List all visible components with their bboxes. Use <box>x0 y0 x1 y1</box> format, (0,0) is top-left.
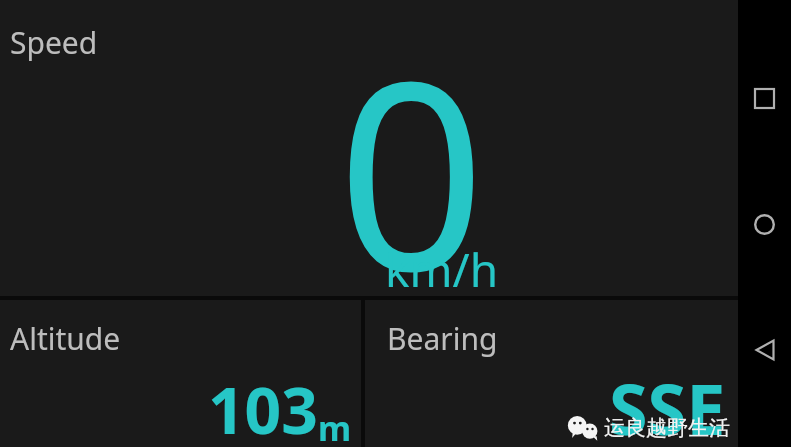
staticText: 103 <box>208 366 318 447</box>
button[interactable]: Bearing <box>365 300 738 447</box>
staticText: 0 <box>337 0 486 288</box>
staticText: Altitude <box>10 318 121 359</box>
button[interactable]: Altitude <box>0 300 361 447</box>
button[interactable]: Recents <box>738 70 791 126</box>
staticText: m <box>318 405 352 447</box>
staticText: Speed <box>10 22 98 63</box>
staticText: 运良越野生活 <box>604 415 730 441</box>
button[interactable]: Back <box>738 322 791 378</box>
button[interactable]: Home <box>738 196 791 252</box>
staticText: Bearing <box>387 318 498 359</box>
button[interactable]: Speed <box>0 0 738 296</box>
staticText: km/h <box>385 238 499 301</box>
staticText: SSE <box>609 360 726 447</box>
